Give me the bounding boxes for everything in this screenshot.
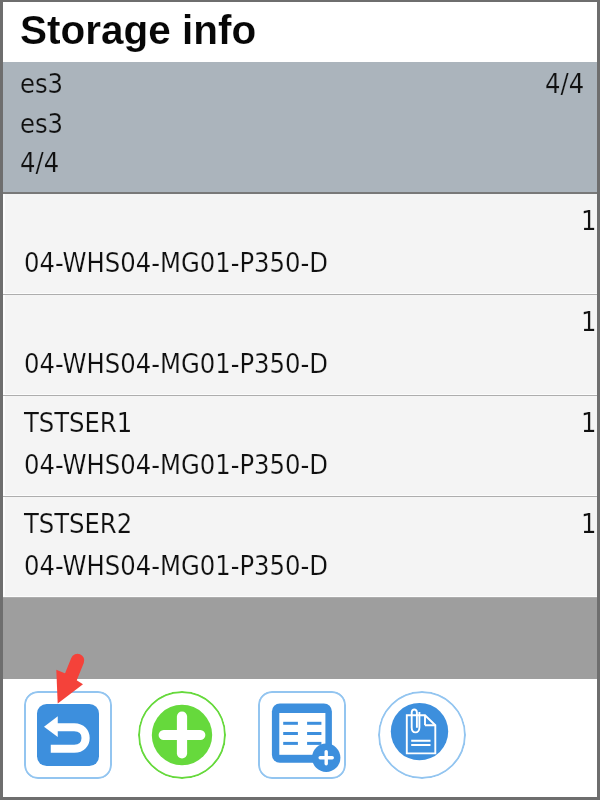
button[interactable]: 1 (3, 194, 597, 295)
button[interactable]: Attach document (378, 691, 466, 779)
staticText: 04-WHS04-MG01-P350-D (24, 550, 328, 581)
staticText: 4/4 (20, 147, 60, 178)
button[interactable]: Back (24, 691, 112, 779)
button[interactable]: Add (138, 691, 226, 779)
staticText: 04-WHS04-MG01-P350-D (24, 247, 328, 278)
staticText: es3 (20, 108, 64, 139)
staticText: es3 (20, 68, 64, 99)
staticText: 04-WHS04-MG01-P350-D (24, 348, 328, 379)
staticText: 1 (581, 306, 597, 337)
button[interactable]: 1 (3, 295, 597, 396)
staticText: 04-WHS04-MG01-P350-D (24, 449, 328, 480)
staticText: Storage info (20, 7, 257, 52)
staticText: 1 (581, 407, 597, 438)
staticText: 1 (581, 508, 597, 539)
staticText: 4/4 (545, 68, 585, 99)
staticText: TSTSER2 (24, 508, 133, 539)
staticText: TSTSER1 (24, 407, 133, 438)
button[interactable]: New list (258, 691, 346, 779)
staticText: 1 (581, 205, 597, 236)
button[interactable]: TSTSER1 (3, 396, 597, 497)
button[interactable]: TSTSER2 (3, 497, 597, 598)
